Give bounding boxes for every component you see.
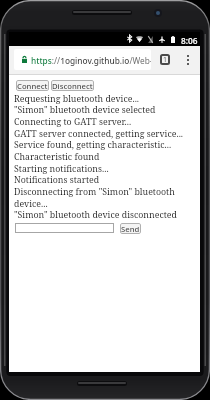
staticText: GATT server connected, getting service..… — [14, 128, 184, 140]
staticText: Disconnect — [52, 81, 93, 91]
staticText: https://1oginov.github.io/Web- — [31, 55, 151, 66]
staticText: 1 — [163, 55, 168, 65]
button[interactable]: Tabs — [160, 54, 170, 65]
button[interactable]: Connect — [16, 80, 49, 91]
staticText: Characteristic found — [14, 151, 100, 163]
staticText: Service found, getting characteristic... — [14, 139, 172, 151]
staticText: Starting notifications... — [14, 163, 109, 175]
button[interactable]: Message input — [15, 223, 114, 233]
staticText: Notifications started — [14, 174, 100, 186]
staticText: Requesting bluetooth device... — [14, 93, 140, 105]
button[interactable]: https://1oginov.github.io/Web- — [14, 49, 151, 70]
staticText: Connect — [17, 81, 48, 91]
staticText: device... — [14, 198, 48, 210]
staticText: Connecting to GATT server... — [14, 116, 132, 128]
staticText: Disconnecting from "Simon" bluetooth — [14, 186, 175, 198]
button[interactable]: More options — [182, 52, 194, 68]
button[interactable]: Send — [120, 223, 141, 234]
staticText: 8:06 — [181, 35, 198, 46]
staticText: "Simon" bluetooth device selected — [14, 104, 156, 116]
staticText: Send — [121, 224, 140, 234]
button[interactable]: Disconnect — [51, 80, 94, 91]
staticText: "Simon" bluetooth device disconnected — [14, 209, 177, 221]
